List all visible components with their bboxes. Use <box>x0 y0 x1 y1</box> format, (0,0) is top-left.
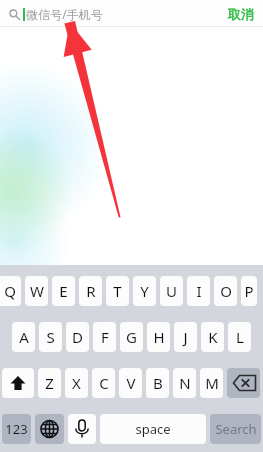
button[interactable]: W <box>25 276 48 306</box>
staticText: O <box>220 281 232 301</box>
button[interactable]: I <box>187 276 210 306</box>
button[interactable]: 取消 <box>219 0 263 27</box>
staticText: S <box>46 327 55 347</box>
button[interactable]: Backspace <box>227 368 260 398</box>
button[interactable]: L <box>228 322 251 352</box>
staticText: T <box>113 281 122 301</box>
staticText: U <box>166 281 177 301</box>
button[interactable]: 123 <box>2 414 31 444</box>
staticText: W <box>30 281 44 301</box>
button[interactable]: T <box>106 276 129 306</box>
staticText: L <box>236 327 244 347</box>
button[interactable]: A <box>12 322 35 352</box>
staticText: B <box>153 373 163 393</box>
staticText: 微信号/手机号 <box>26 6 103 22</box>
button[interactable]: J <box>174 322 197 352</box>
staticText: D <box>72 327 83 347</box>
staticText: J <box>183 327 188 347</box>
button[interactable]: M <box>200 368 223 398</box>
staticText: space <box>135 420 171 438</box>
button[interactable]: R <box>79 276 102 306</box>
staticText: M <box>205 373 219 393</box>
button[interactable]: N <box>173 368 196 398</box>
staticText: Q <box>4 281 16 301</box>
staticText: Z <box>45 373 54 393</box>
staticText: H <box>153 327 165 347</box>
button[interactable]: space <box>100 414 206 444</box>
button[interactable]: 微信号/手机号 <box>4 3 213 24</box>
button[interactable]: K <box>201 322 224 352</box>
button[interactable]: V <box>119 368 142 398</box>
button[interactable]: H <box>147 322 170 352</box>
staticText: Search <box>215 420 257 438</box>
button[interactable]: Shift <box>2 368 34 398</box>
button[interactable]: Search <box>210 414 261 444</box>
button[interactable]: C <box>92 368 115 398</box>
staticText: Y <box>140 281 149 301</box>
staticText: V <box>126 373 136 393</box>
staticText: K <box>208 327 218 347</box>
button[interactable]: F <box>93 322 116 352</box>
staticText: E <box>59 281 68 301</box>
staticText: 取消 <box>228 6 254 22</box>
staticText: F <box>101 327 109 347</box>
button[interactable]: O <box>214 276 237 306</box>
button[interactable]: D <box>66 322 89 352</box>
button[interactable]: Y <box>133 276 156 306</box>
button[interactable]: Q <box>0 276 21 306</box>
button[interactable]: X <box>65 368 88 398</box>
button[interactable]: S <box>39 322 62 352</box>
button[interactable]: E <box>52 276 75 306</box>
staticText: P <box>244 281 254 301</box>
button[interactable]: B <box>146 368 169 398</box>
staticText: X <box>72 373 81 393</box>
staticText: I <box>196 281 202 301</box>
staticText: G <box>126 327 137 347</box>
staticText: 123 <box>5 420 28 438</box>
staticText: A <box>19 327 29 347</box>
button[interactable]: Z <box>38 368 61 398</box>
button[interactable]: Voice input <box>68 414 96 444</box>
button[interactable]: G <box>120 322 143 352</box>
button[interactable]: U <box>160 276 183 306</box>
staticText: N <box>179 373 191 393</box>
staticText: C <box>99 373 109 393</box>
staticText: R <box>86 281 96 301</box>
button[interactable]: P <box>241 276 257 306</box>
button[interactable]: Switch keyboard <box>35 414 64 444</box>
